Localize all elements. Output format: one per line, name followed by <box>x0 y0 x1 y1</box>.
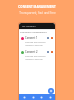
button[interactable]: Consent 1 <box>20 35 54 48</box>
staticText: Collected data purpose <box>25 55 46 58</box>
staticText: Collected data purpose <box>25 41 46 44</box>
staticText: Consent 1 <box>25 36 47 40</box>
button[interactable]: Consent 2 <box>20 49 54 62</box>
button[interactable]: History <box>37 94 45 100</box>
staticText: My consents <box>22 25 36 28</box>
button[interactable]: Add consent <box>48 88 54 94</box>
button[interactable]: Consents <box>29 94 37 100</box>
button[interactable]: Home <box>20 94 28 100</box>
staticText: CONSENT MANAGEMENT <box>18 5 56 9</box>
staticText: Transparent, fast and free <box>19 11 56 15</box>
button[interactable]: Profile <box>46 94 54 100</box>
staticText: Conditions management <box>20 31 47 34</box>
staticText: Updated 2 days ago <box>25 58 43 61</box>
staticText: Updated 2 days ago <box>25 44 43 47</box>
staticText: Consent 2 <box>25 50 47 54</box>
